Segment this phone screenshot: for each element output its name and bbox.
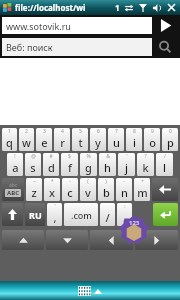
staticText: l: [163, 160, 166, 175]
staticText: 7: [115, 128, 118, 135]
staticText: x: [49, 185, 55, 200]
staticText: %: [86, 153, 91, 160]
button[interactable]: $: [61, 153, 78, 176]
button[interactable]: Backspace: [152, 178, 178, 201]
button[interactable]: Volume: [152, 3, 162, 13]
staticText: 0: [169, 128, 172, 135]
staticText: 6: [97, 128, 100, 135]
staticText: file://localhost/wi: [15, 2, 86, 13]
button[interactable]: Up: [2, 230, 44, 250]
staticText: r: [60, 135, 65, 150]
staticText: 8: [133, 128, 136, 135]
staticText: n: [121, 185, 128, 200]
button[interactable]: :: [117, 203, 132, 226]
button[interactable]: #: [43, 153, 59, 176]
staticText: z: [31, 185, 37, 200]
staticText: #: [49, 153, 53, 160]
button[interactable]: 7: [108, 128, 124, 151]
staticText: abc: [9, 182, 18, 189]
staticText: :: [124, 203, 126, 210]
staticText: ': [126, 153, 128, 160]
button[interactable]: 4: [54, 128, 70, 151]
staticText: f: [68, 160, 72, 175]
staticText: i: [133, 135, 136, 150]
staticText: ': [54, 203, 56, 210]
button[interactable]: 0: [162, 128, 178, 151]
button[interactable]: +: [134, 178, 150, 201]
staticText: -: [123, 178, 125, 185]
button[interactable]: 6: [90, 128, 106, 151]
staticText: o: [149, 135, 156, 150]
staticText: u: [113, 135, 120, 150]
staticText: www.sotovik.ru: [6, 20, 71, 32]
staticText: g: [85, 160, 92, 175]
button[interactable]: -: [116, 178, 132, 201]
staticText: +: [141, 178, 144, 185]
button[interactable]: Search: [152, 38, 178, 56]
staticText: (: [87, 178, 89, 185]
staticText: c: [67, 185, 73, 200]
button[interactable]: Shift: [2, 203, 23, 226]
button[interactable]: Signal: [138, 3, 148, 13]
button[interactable]: !: [7, 153, 23, 176]
staticText: @: [31, 153, 36, 160]
button[interactable]: 5: [72, 128, 88, 151]
staticText: p: [167, 135, 174, 150]
button[interactable]: Close: [166, 2, 177, 13]
button[interactable]: ): [98, 178, 114, 201]
staticText: &: [106, 153, 110, 160]
button[interactable]: &: [99, 153, 116, 176]
staticText: ABC: [7, 189, 19, 197]
button[interactable]: 1: [2, 128, 17, 151]
staticText: 2: [25, 128, 28, 135]
staticText: !: [14, 153, 16, 160]
button[interactable]: Right: [135, 230, 178, 250]
button[interactable]: .com: [64, 203, 98, 226]
button[interactable]: www.sotovik.ru: [6, 17, 152, 34]
button[interactable]: Down: [46, 230, 88, 250]
button[interactable]: RU: [25, 203, 45, 226]
button[interactable]: ?: [137, 153, 154, 176]
staticText: d: [48, 160, 55, 175]
staticText: RU: [29, 209, 42, 221]
staticText: ~: [33, 178, 36, 185]
button[interactable]: Connectivity: [124, 3, 134, 13]
staticText: 4: [61, 128, 64, 135]
staticText: t: [78, 135, 83, 150]
staticText: ,: [53, 210, 57, 225]
button[interactable]: Input options: [119, 215, 149, 245]
staticText: 1: [8, 128, 11, 135]
button[interactable]: Веб: поиск: [6, 38, 152, 56]
button[interactable]: 8: [126, 128, 142, 151]
staticText: 123: [129, 219, 140, 227]
button[interactable]: Start: [2, 2, 13, 13]
button[interactable]: Left: [90, 230, 133, 250]
staticText: a: [12, 160, 19, 175]
staticText: m: [137, 185, 148, 200]
button[interactable]: ': [118, 153, 135, 176]
staticText: s: [30, 160, 36, 175]
button[interactable]: Enter: [153, 203, 178, 226]
staticText: ?: [144, 153, 147, 160]
staticText: e: [41, 135, 48, 150]
button[interactable]: ': [47, 203, 62, 226]
button[interactable]: @: [25, 153, 41, 176]
staticText: h: [104, 160, 111, 175]
button[interactable]: 9: [144, 128, 160, 151]
button[interactable]: Go: [152, 17, 178, 34]
staticText: -: [69, 178, 71, 185]
button[interactable]: Keyboard: [78, 286, 91, 296]
button[interactable]: ~: [26, 178, 42, 201]
staticText: 3: [43, 128, 46, 135]
button[interactable]: 3: [36, 128, 52, 151]
staticText: 9: [151, 128, 154, 135]
button[interactable]: %: [80, 153, 97, 176]
button[interactable]: /: [156, 153, 173, 176]
button[interactable]: 2: [19, 128, 34, 151]
button[interactable]: abc: [2, 178, 24, 201]
staticText: 1: [115, 2, 120, 13]
button[interactable]: -: [62, 178, 78, 201]
button[interactable]: /: [100, 203, 115, 226]
button[interactable]: *: [44, 178, 60, 201]
button[interactable]: (: [80, 178, 96, 201]
